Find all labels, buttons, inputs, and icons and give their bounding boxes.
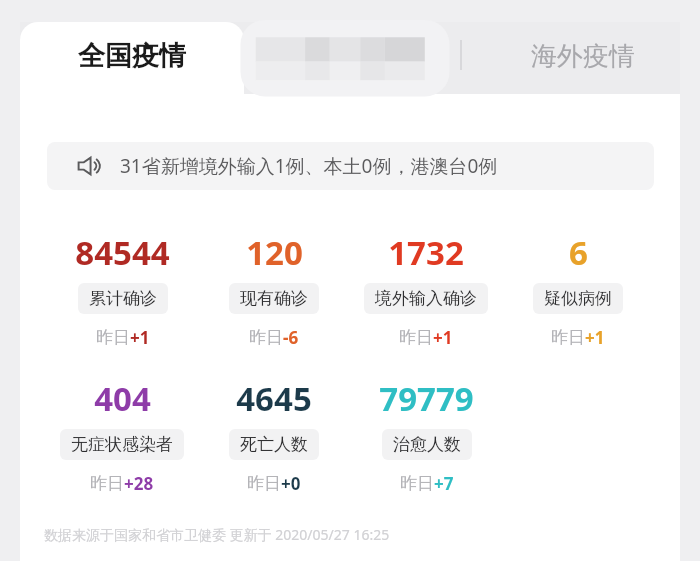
button[interactable]: 1732 xyxy=(362,230,490,349)
staticText: 无症状感染者 xyxy=(71,434,173,455)
button[interactable]: Announcement xyxy=(47,142,654,190)
staticText: 84544 xyxy=(75,230,170,275)
staticText: +1 xyxy=(130,326,150,349)
staticText: 120 xyxy=(246,230,303,275)
staticText: 79779 xyxy=(379,376,474,421)
staticText: 1732 xyxy=(388,230,464,275)
staticText: 疑似病例 xyxy=(544,288,612,309)
staticText: 6 xyxy=(569,230,588,275)
staticText: 昨日 xyxy=(90,473,124,494)
button[interactable]: 6 xyxy=(531,230,625,349)
staticText: 昨日 xyxy=(399,327,433,348)
staticText: +0 xyxy=(281,472,301,495)
staticText: 昨日 xyxy=(247,473,281,494)
button[interactable]: 84544 xyxy=(73,230,172,349)
staticText: 昨日 xyxy=(551,327,585,348)
staticText: 现有确诊 xyxy=(240,288,308,309)
staticText: 全国疫情 xyxy=(78,39,186,73)
staticText: 海外疫情 xyxy=(531,40,635,73)
staticText: 治愈人数 xyxy=(393,434,461,455)
staticText: +28 xyxy=(124,472,154,495)
button[interactable]: 全国疫情 xyxy=(20,22,244,94)
staticText: 4645 xyxy=(236,376,312,421)
other: Announcement xyxy=(76,153,102,179)
button[interactable]: 120 xyxy=(227,230,321,349)
button[interactable]: 79779 xyxy=(377,376,476,495)
button[interactable]: 404 xyxy=(58,376,186,495)
staticText: 404 xyxy=(94,376,151,421)
button[interactable]: 4645 xyxy=(227,376,321,495)
staticText: -6 xyxy=(283,326,299,349)
staticText: 31省新增境外输入1例、本土0例，港澳台0例 xyxy=(120,153,498,179)
staticText: 数据来源于国家和省市卫健委 更新于 2020/05/27 16:25 xyxy=(44,525,390,544)
staticText: 累计确诊 xyxy=(89,288,157,309)
staticText: 昨日 xyxy=(96,327,130,348)
staticText: 境外输入确诊 xyxy=(375,288,477,309)
staticText: 昨日 xyxy=(400,473,434,494)
staticText: 死亡人数 xyxy=(240,434,308,455)
button[interactable]: 海外疫情 xyxy=(498,22,668,94)
staticText: 昨日 xyxy=(249,327,283,348)
staticText: +1 xyxy=(585,326,605,349)
staticText: +7 xyxy=(434,472,454,495)
button[interactable]: Tab xyxy=(250,28,440,86)
staticText: +1 xyxy=(433,326,453,349)
